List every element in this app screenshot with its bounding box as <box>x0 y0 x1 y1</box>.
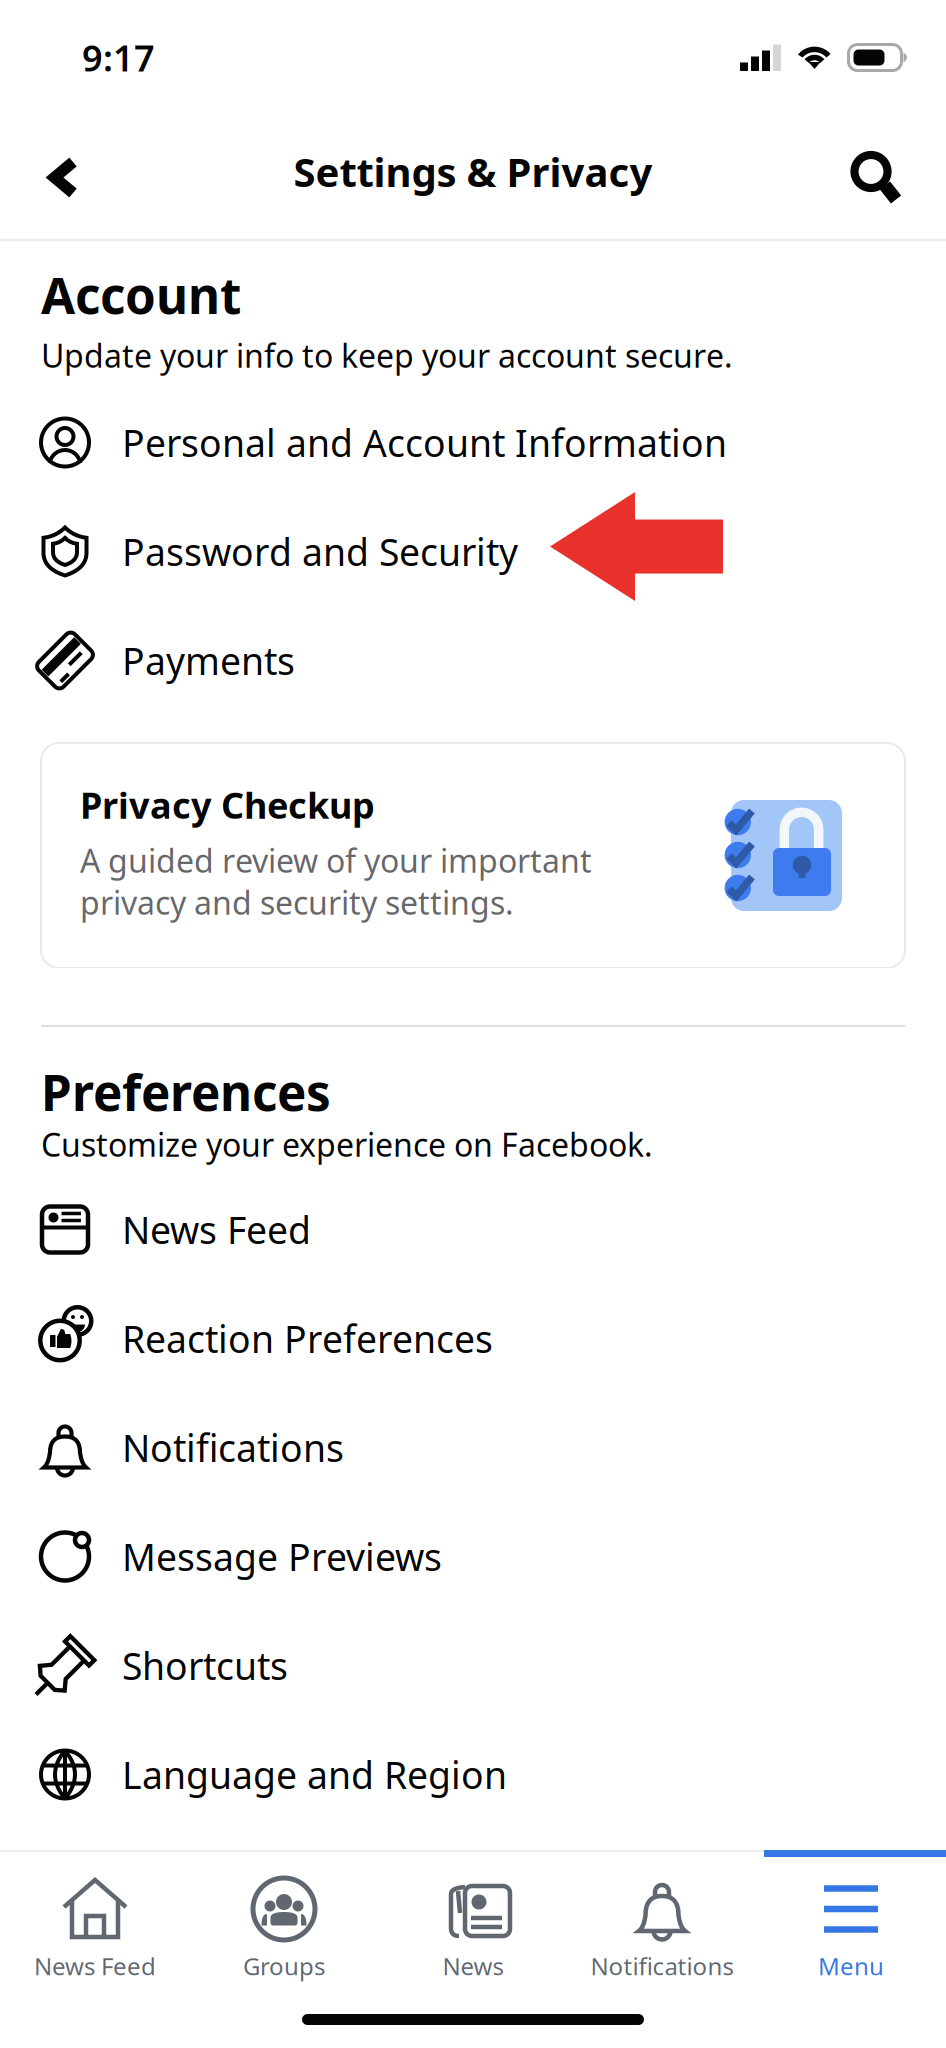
button[interactable]: Back <box>21 127 99 207</box>
button[interactable]: News Feed <box>0 1857 189 1994</box>
button[interactable]: Privacy Checkup <box>41 743 905 968</box>
staticText: Notifications <box>122 1423 344 1472</box>
staticText: Message Previews <box>122 1532 442 1581</box>
button[interactable]: Groups <box>189 1857 378 1994</box>
staticText: Payments <box>122 636 295 685</box>
button[interactable]: Notifications <box>0 1393 946 1502</box>
button[interactable]: Language and Region <box>0 1720 946 1829</box>
button[interactable]: Menu <box>756 1857 945 1994</box>
staticText: Personal and Account Information <box>122 418 727 467</box>
staticText: privacy and security settings. <box>80 881 514 923</box>
staticText: Language and Region <box>122 1750 507 1799</box>
staticText: Settings & Privacy <box>293 145 652 198</box>
button[interactable]: News Feed <box>0 1175 946 1284</box>
staticText: News Feed <box>122 1205 311 1254</box>
staticText: Menu <box>818 1950 884 1982</box>
staticText: Customize your experience on Facebook. <box>41 1123 653 1165</box>
staticText: News Feed <box>34 1950 156 1982</box>
button[interactable]: Shortcuts <box>0 1611 946 1720</box>
button[interactable]: Personal and Account Information <box>0 388 946 497</box>
staticText: News <box>442 1950 503 1982</box>
button[interactable]: Search <box>840 127 918 207</box>
button[interactable]: Payments <box>0 606 946 715</box>
button[interactable]: Reaction Preferences <box>0 1284 946 1393</box>
staticText: Privacy Checkup <box>80 781 375 829</box>
staticText: 9:17 <box>82 34 155 81</box>
button[interactable]: News <box>378 1857 567 1994</box>
staticText: Account <box>41 262 241 327</box>
staticText: Update your info to keep your account se… <box>41 334 733 376</box>
button[interactable]: Password and Security <box>0 497 946 606</box>
staticText: A guided review of your important <box>80 839 592 881</box>
staticText: Reaction Preferences <box>122 1314 493 1363</box>
staticText: Groups <box>243 1950 325 1982</box>
staticText: Notifications <box>590 1950 733 1982</box>
staticText: Password and Security <box>122 527 518 576</box>
staticText: Shortcuts <box>122 1641 288 1690</box>
staticText: Preferences <box>41 1059 331 1124</box>
button[interactable]: Notifications <box>567 1857 756 1994</box>
button[interactable]: Message Previews <box>0 1502 946 1611</box>
